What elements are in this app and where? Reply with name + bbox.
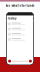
button[interactable] bbox=[8, 60, 11, 63]
button[interactable] bbox=[7, 32, 33, 37]
button[interactable] bbox=[7, 26, 33, 32]
button[interactable] bbox=[7, 21, 33, 26]
staticText: Today bbox=[8, 17, 17, 20]
staticText: See what's for lunch bbox=[5, 4, 34, 7]
button[interactable] bbox=[29, 60, 32, 63]
button[interactable] bbox=[7, 37, 33, 42]
